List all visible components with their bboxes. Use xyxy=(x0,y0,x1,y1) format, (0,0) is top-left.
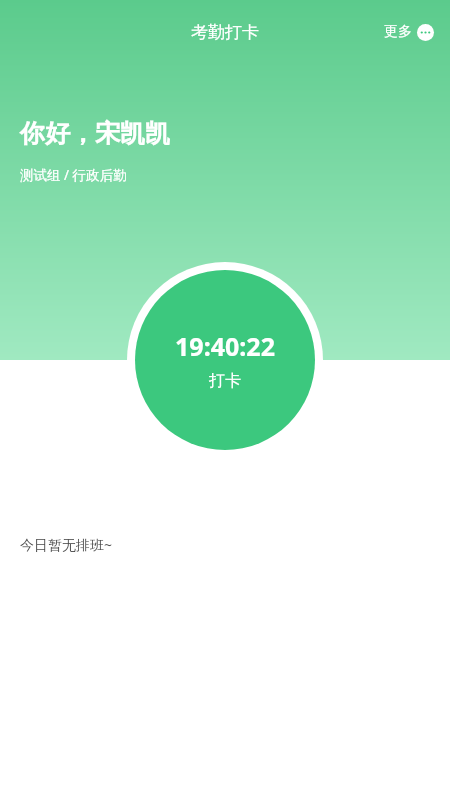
staticText: 测试组 / 行政后勤 xyxy=(20,166,127,184)
staticText: 19:40:22 xyxy=(175,329,275,363)
staticText: 打卡 xyxy=(209,371,241,391)
button[interactable]: 更多 xyxy=(378,17,440,47)
staticText: 更多 xyxy=(384,23,412,41)
staticText: 你好，宋凯凯 xyxy=(20,118,170,149)
staticText: 考勤打卡 xyxy=(191,22,259,43)
button[interactable]: 19:40:22 xyxy=(127,262,323,458)
staticText: 今日暂无排班~ xyxy=(20,535,113,554)
